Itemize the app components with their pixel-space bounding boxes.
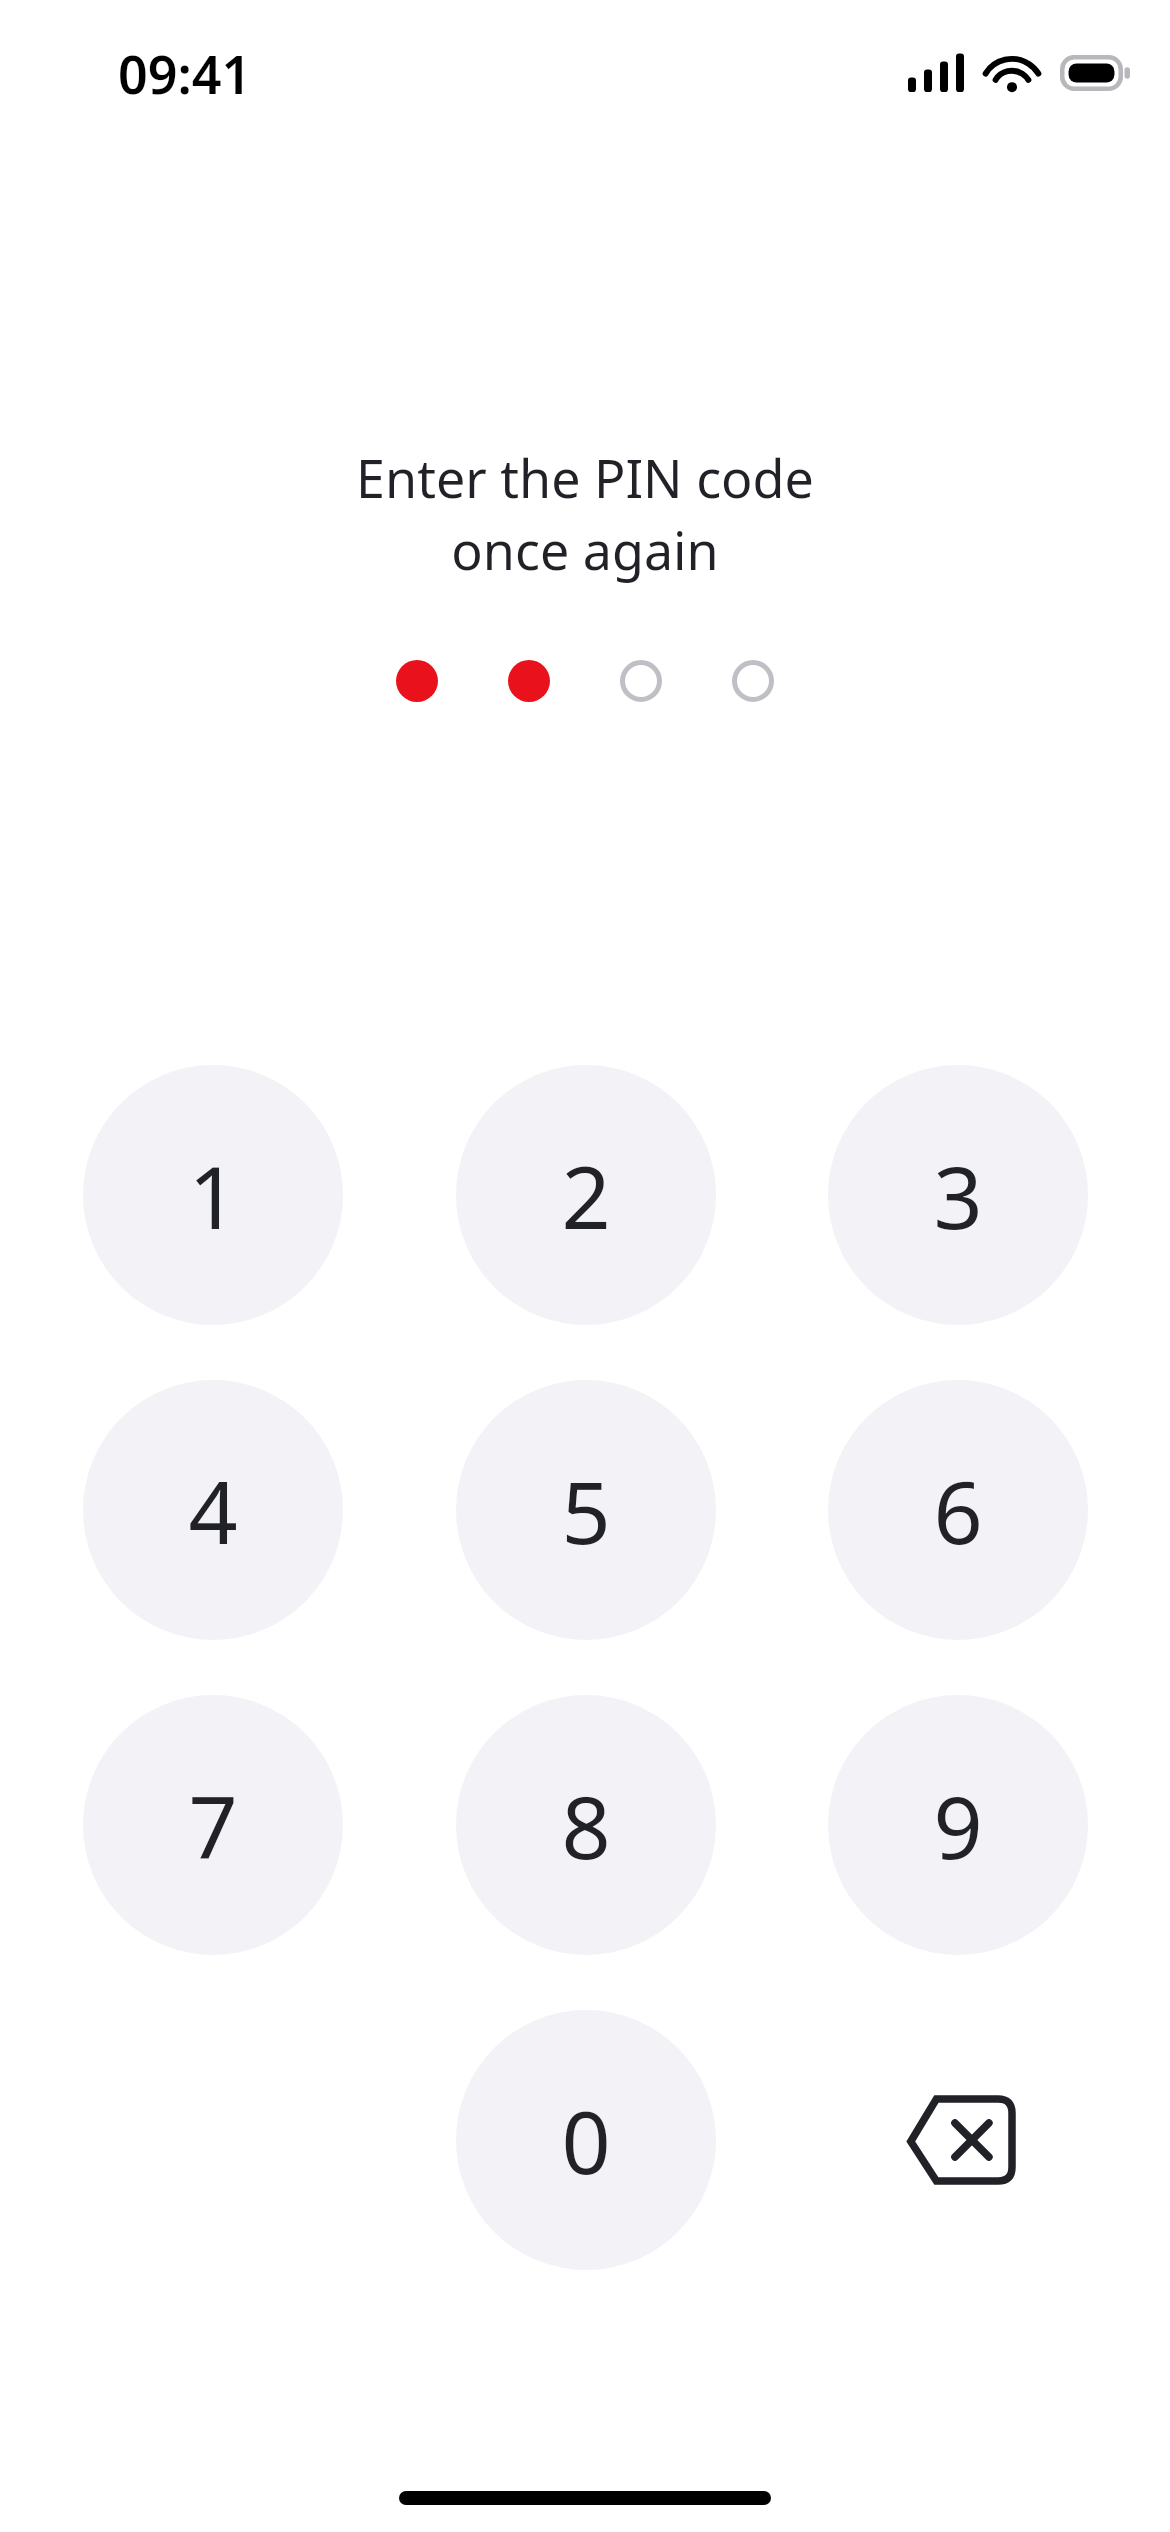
staticText: 8 (561, 1767, 611, 1884)
button[interactable]: Backspace (828, 2010, 1088, 2270)
staticText: 09:41 (118, 38, 252, 109)
staticText: 5 (561, 1452, 611, 1569)
button[interactable]: 6 (828, 1380, 1088, 1640)
button[interactable]: 9 (828, 1695, 1088, 1955)
button[interactable]: 1 (83, 1065, 343, 1325)
staticText: 2 (561, 1137, 611, 1254)
button[interactable]: 0 (456, 2010, 716, 2270)
button[interactable]: 7 (83, 1695, 343, 1955)
staticText: 7 (188, 1767, 238, 1884)
button[interactable]: 3 (828, 1065, 1088, 1325)
staticText: 3 (933, 1137, 983, 1254)
button[interactable]: 4 (83, 1380, 343, 1640)
button[interactable]: 5 (456, 1380, 716, 1640)
staticText: 4 (188, 1452, 238, 1569)
button[interactable]: 2 (456, 1065, 716, 1325)
staticText: 9 (933, 1767, 983, 1884)
staticText: 0 (561, 2082, 611, 2199)
staticText: 1 (188, 1137, 238, 1254)
staticText: Enter the PIN code once again (0, 442, 1170, 585)
staticText: 6 (933, 1452, 983, 1569)
button[interactable]: 8 (456, 1695, 716, 1955)
